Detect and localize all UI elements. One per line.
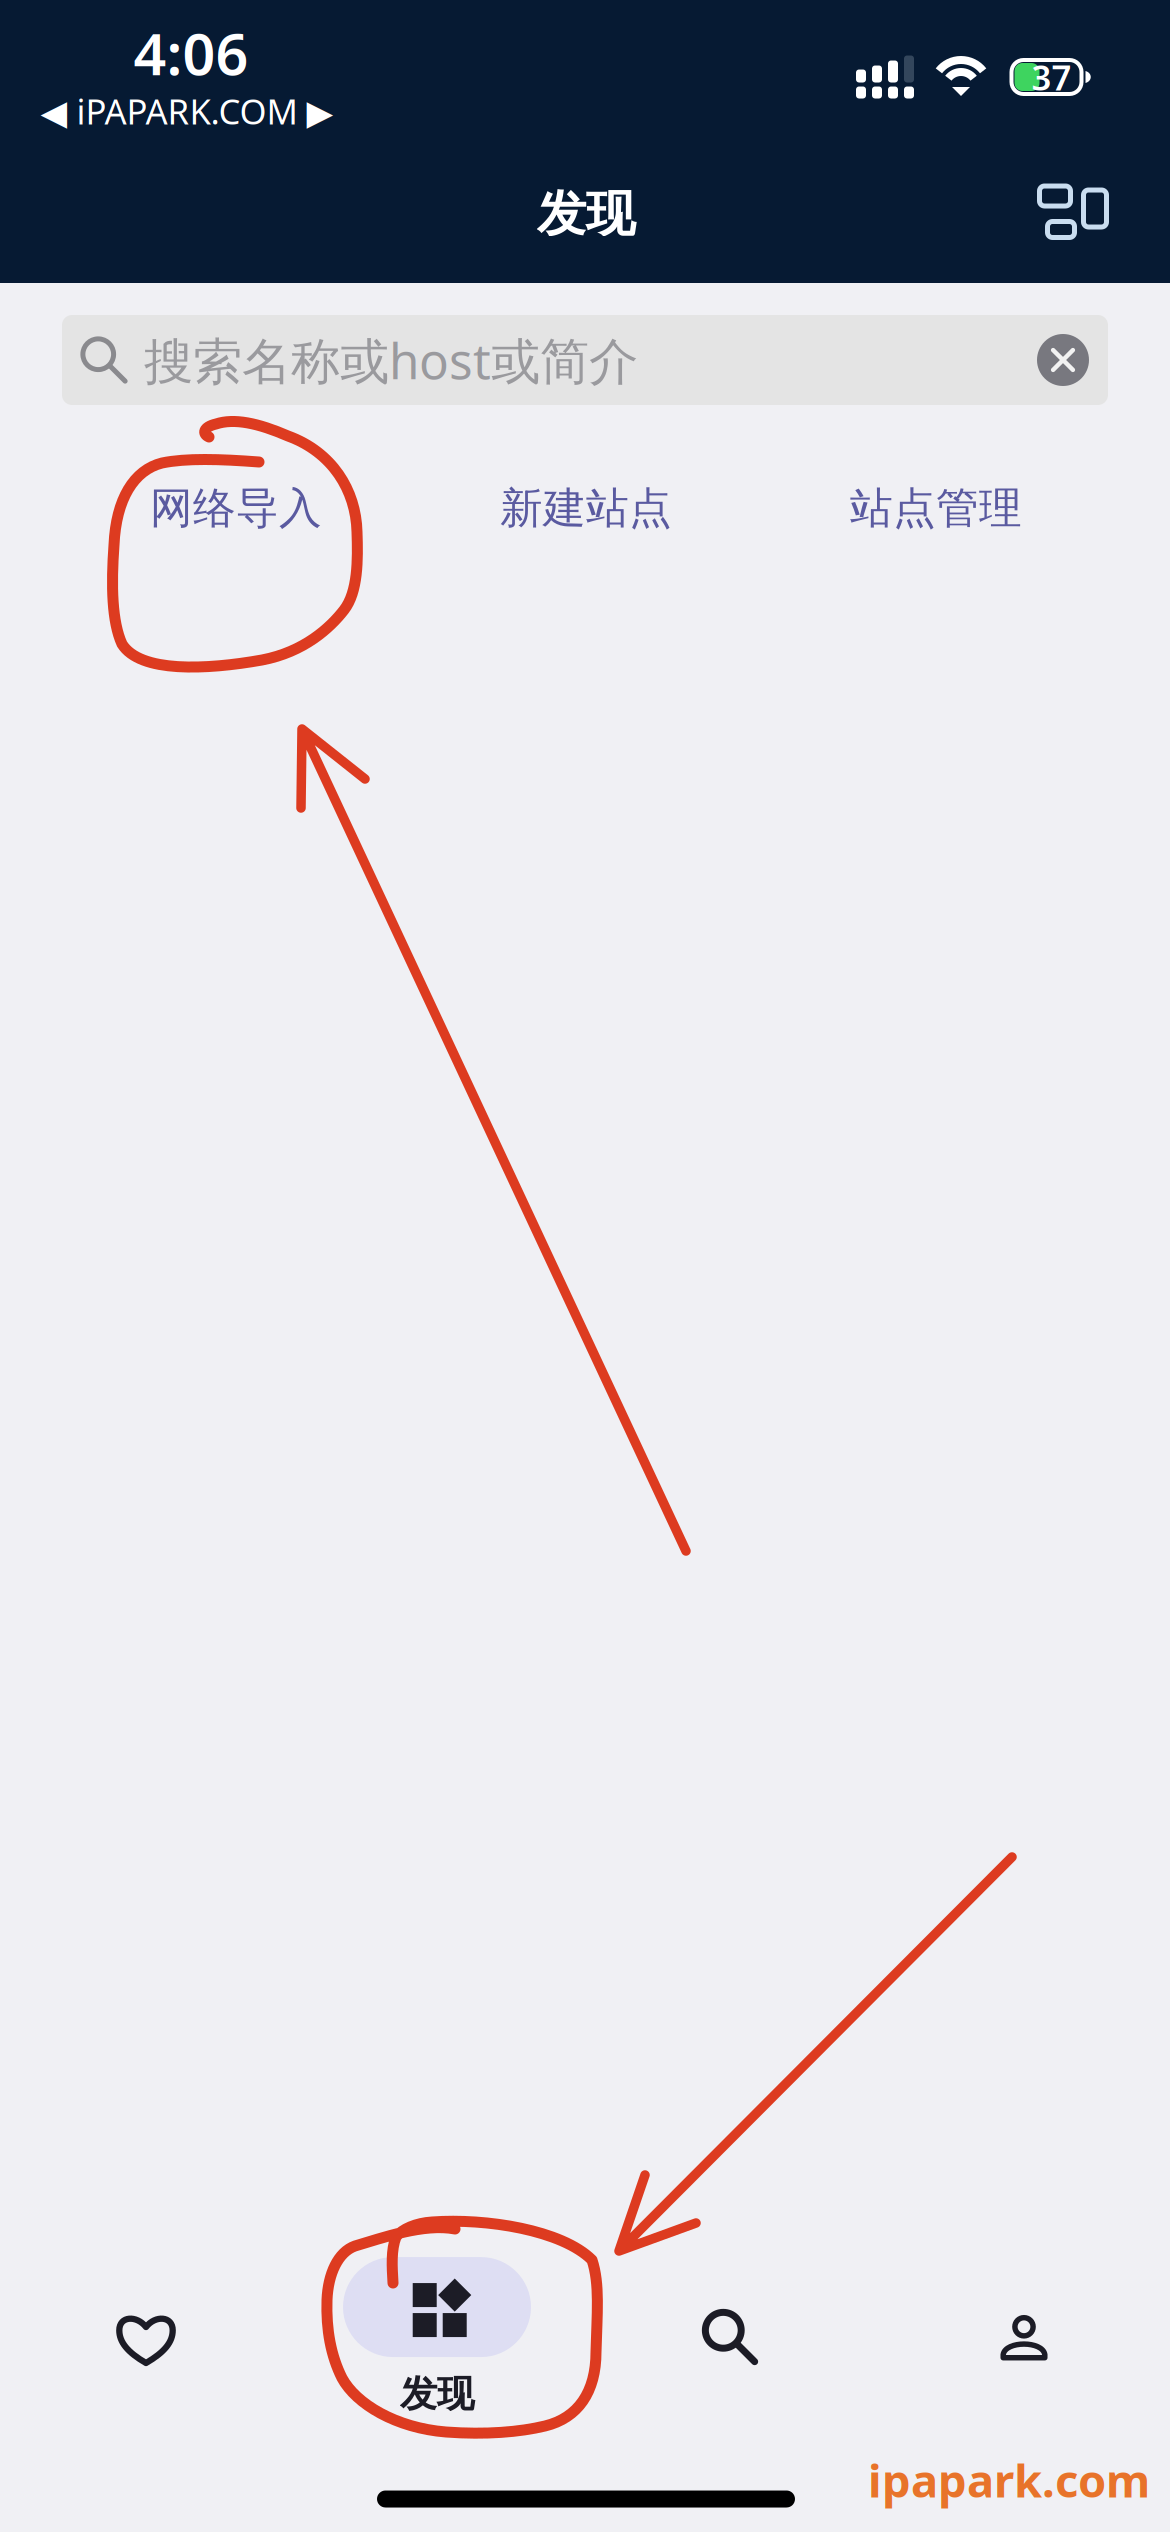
button[interactable]: Layout options <box>1013 157 1133 267</box>
button[interactable]: 新建站点 <box>500 482 672 534</box>
button[interactable]: 发现 <box>317 2239 557 2435</box>
button[interactable]: Favorites <box>56 2264 236 2414</box>
staticText: 发现 <box>400 2371 474 2417</box>
button[interactable]: Search <box>640 2262 820 2412</box>
staticText: 发现 <box>537 184 635 244</box>
button[interactable]: Clear search <box>1018 315 1108 405</box>
staticText: 网络导入 <box>150 482 322 534</box>
staticText: 站点管理 <box>850 482 1022 534</box>
staticText: ◀ iPAPARK.COM ▶ <box>40 88 333 134</box>
staticText: 新建站点 <box>500 482 672 534</box>
button[interactable]: Profile <box>934 2264 1114 2414</box>
staticText: 4:06 <box>133 15 248 91</box>
staticText: 37 <box>1031 54 1071 100</box>
staticText: ipapark.com <box>868 2450 1150 2510</box>
button[interactable]: 站点管理 <box>850 482 1022 534</box>
staticText: 搜索名称或host或简介 <box>144 327 638 393</box>
button[interactable]: 网络导入 <box>150 482 322 534</box>
